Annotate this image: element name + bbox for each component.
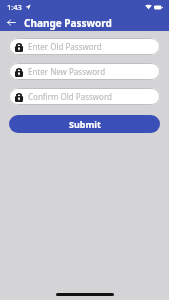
staticText: Enter Old Password: [28, 41, 102, 52]
button[interactable]: Enter New Password: [9, 63, 160, 80]
staticText: Confirm Old Password: [28, 91, 113, 102]
staticText: 1:43: [7, 2, 22, 12]
button[interactable]: Enter Old Password: [9, 38, 160, 55]
staticText: Submit: [69, 118, 101, 130]
staticText: Enter New Password: [28, 66, 106, 77]
button[interactable]: Confirm Old Password: [9, 88, 160, 105]
staticText: Change Password: [24, 16, 112, 30]
button[interactable]: Back: [4, 15, 19, 30]
button[interactable]: Submit: [9, 115, 160, 133]
